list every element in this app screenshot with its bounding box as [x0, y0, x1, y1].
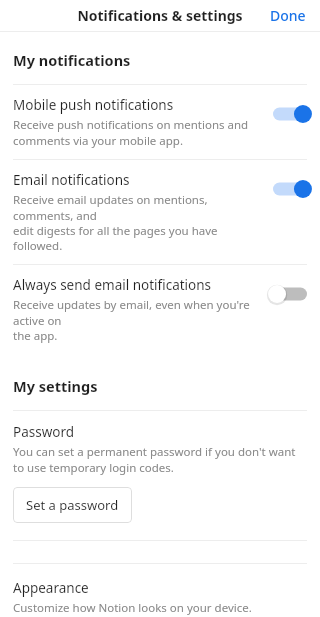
staticText: Set a password	[26, 496, 119, 514]
button[interactable]: Set a password	[13, 487, 132, 523]
button[interactable]: Toggle on	[268, 176, 312, 202]
button[interactable]: Mobile push notifications	[0, 85, 320, 159]
staticText: Password	[13, 423, 75, 441]
staticText: My notifications	[13, 50, 131, 70]
button[interactable]: Toggle off	[268, 281, 312, 307]
button[interactable]: Done	[256, 0, 320, 31]
staticText: Customize how Notion looks on your devic…	[13, 600, 252, 616]
staticText: Receive email updates on mentions, comme…	[13, 192, 260, 253]
staticText: Mobile push notifications	[13, 96, 174, 114]
staticText: Receive push notifications on mentions a…	[13, 117, 249, 148]
staticText: Notifications & settings	[77, 6, 243, 25]
button[interactable]: Toggle on	[268, 101, 312, 127]
staticText: Receive updates by email, even when you'…	[13, 297, 260, 343]
staticText: My settings	[13, 376, 98, 396]
staticText: You can set a permanent password if you …	[13, 444, 296, 475]
staticText: Email notifications	[13, 171, 130, 189]
button[interactable]: Always send email notifications	[0, 265, 320, 354]
staticText: Always send email notifications	[13, 276, 212, 294]
button[interactable]: Email notifications	[0, 160, 320, 264]
staticText: Appearance	[13, 579, 89, 597]
staticText: Done	[270, 6, 306, 25]
